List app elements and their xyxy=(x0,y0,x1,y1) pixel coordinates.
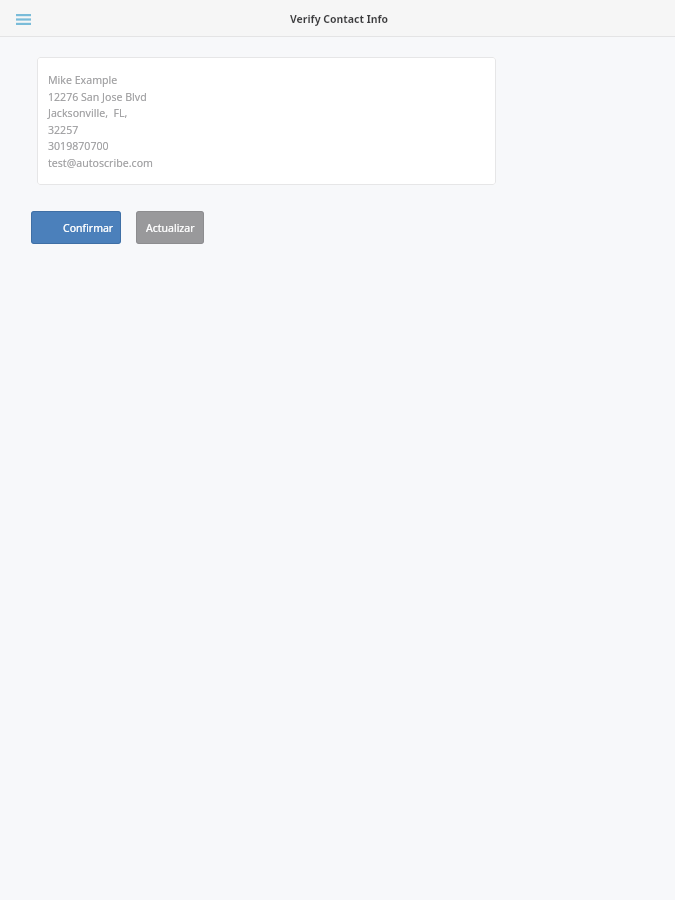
staticText: 12276 San Jose Blvd xyxy=(48,90,147,104)
staticText: Actualizar xyxy=(146,221,195,235)
staticText: Verify Contact Info xyxy=(290,12,389,26)
staticText: Confirmar xyxy=(63,221,114,235)
button[interactable]: Confirmar xyxy=(31,211,121,244)
staticText: Mike Example xyxy=(48,73,118,87)
button[interactable]: Actualizar xyxy=(136,211,204,244)
staticText: test@autoscribe.com xyxy=(48,156,153,170)
button[interactable]: Menu xyxy=(9,5,37,33)
staticText: 32257 xyxy=(48,123,79,137)
staticText: Jacksonville, FL, xyxy=(48,106,128,120)
staticText: 3019870700 xyxy=(48,139,109,153)
